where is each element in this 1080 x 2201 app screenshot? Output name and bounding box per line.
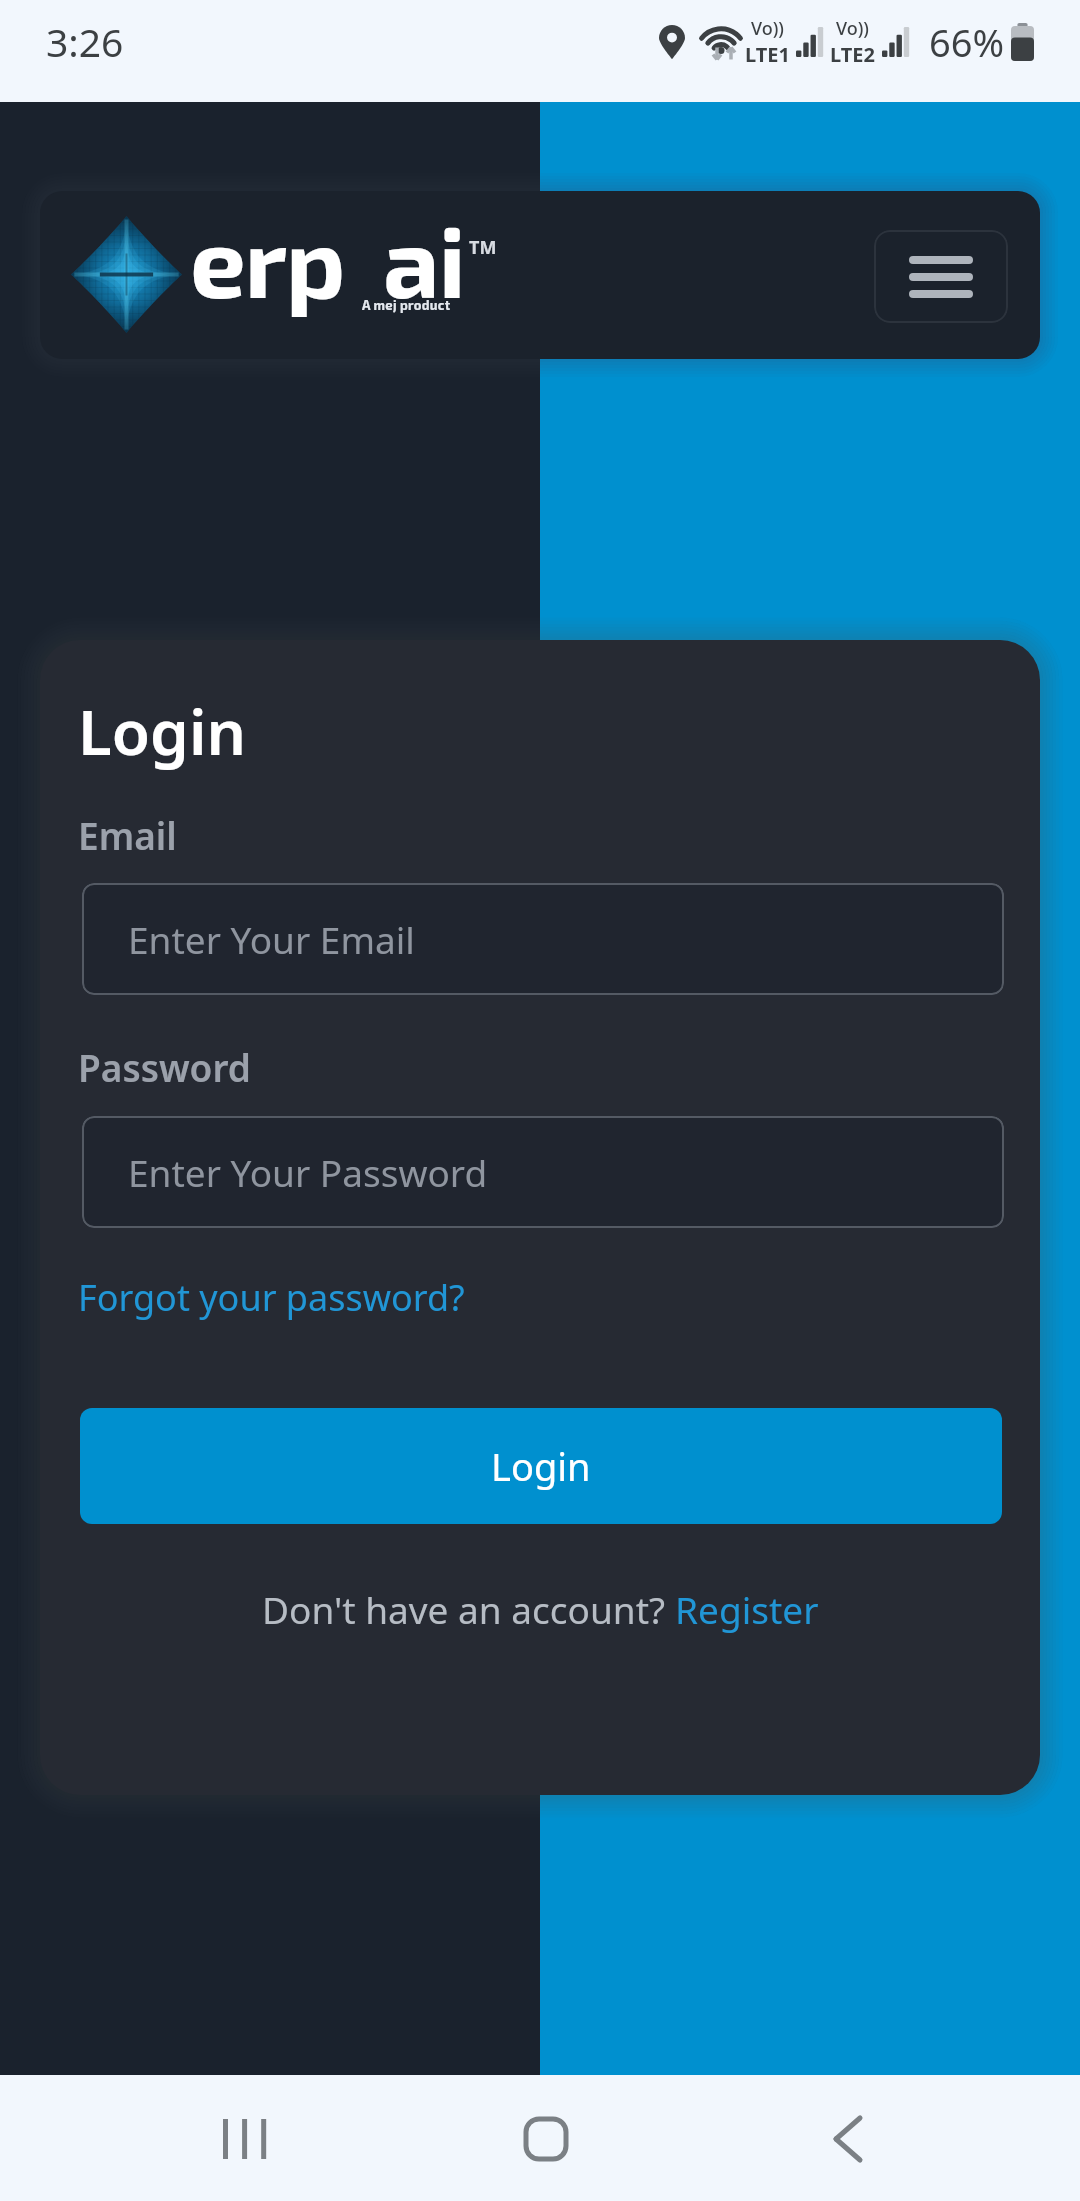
staticText: Don't have an account? (262, 1584, 675, 1634)
button[interactable]: Login (80, 1408, 1002, 1524)
staticText: 66% (929, 16, 1005, 68)
staticText: Login (491, 1440, 591, 1492)
staticText: Register (675, 1584, 819, 1634)
staticText: Vo)) (751, 16, 784, 41)
button[interactable]: Menu (874, 230, 1008, 323)
button[interactable]: Forgot your password? (78, 1273, 465, 1322)
staticText: A mej product (362, 297, 451, 313)
staticText: Enter Your Email (128, 914, 415, 964)
button[interactable]: Back (787, 2091, 907, 2187)
button[interactable]: Recent apps (184, 2091, 304, 2187)
staticText: Forgot your password? (78, 1273, 465, 1322)
button[interactable]: Register (675, 1584, 819, 1634)
button[interactable]: Home (486, 2091, 606, 2187)
staticText: ai (383, 199, 465, 318)
staticText: Login (78, 689, 247, 773)
button[interactable]: Enter Your Password (82, 1116, 1004, 1228)
staticText: LTE1 (745, 41, 790, 68)
staticText: 3:26 (46, 15, 124, 68)
button[interactable]: Enter Your Email (82, 883, 1004, 995)
staticText: Password (78, 1042, 251, 1092)
staticText: Enter Your Password (128, 1147, 488, 1197)
staticText: LTE2 (830, 41, 875, 68)
staticText: erp (190, 199, 345, 318)
staticText: Vo)) (836, 16, 869, 41)
staticText: Email (78, 810, 177, 860)
staticText: TM (469, 235, 497, 260)
